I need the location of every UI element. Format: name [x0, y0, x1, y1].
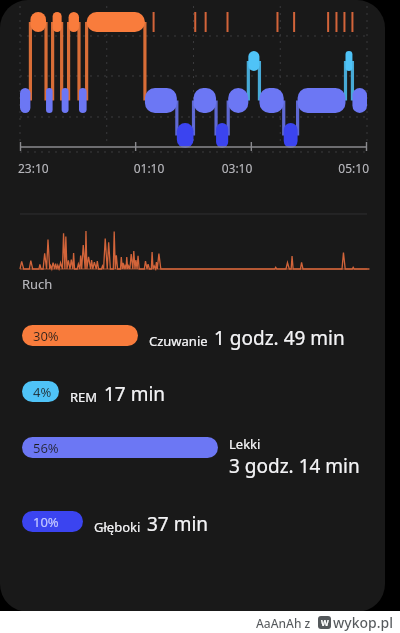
- staticText: 05:10: [281, 160, 369, 176]
- staticText: wykop.pl: [333, 613, 394, 632]
- staticText: W: [321, 617, 329, 628]
- staticText: Głęboki: [94, 518, 141, 536]
- staticText: 1 godz. 49 min: [214, 325, 345, 351]
- staticText: Czuwanie: [149, 332, 208, 350]
- staticText: 56%: [33, 439, 59, 457]
- staticText: 17 min: [104, 381, 166, 407]
- button[interactable]: 56%: [0, 437, 385, 481]
- staticText: 37 min: [147, 511, 209, 537]
- button[interactable]: 4%: [0, 381, 385, 407]
- staticText: Ruch: [22, 275, 53, 293]
- staticText: 10%: [33, 513, 59, 531]
- button[interactable]: 10%: [0, 511, 385, 537]
- staticText: REM: [70, 388, 98, 406]
- staticText: 23:10: [18, 160, 105, 176]
- staticText: Lekki: [229, 435, 261, 453]
- staticText: 03:10: [193, 160, 281, 176]
- staticText: 3 godz. 14 min: [229, 453, 360, 479]
- staticText: 4%: [33, 383, 52, 401]
- staticText: AaAnAh z: [256, 615, 311, 631]
- button[interactable]: 30%: [0, 325, 385, 351]
- staticText: 30%: [33, 327, 59, 345]
- staticText: 01:10: [105, 160, 193, 176]
